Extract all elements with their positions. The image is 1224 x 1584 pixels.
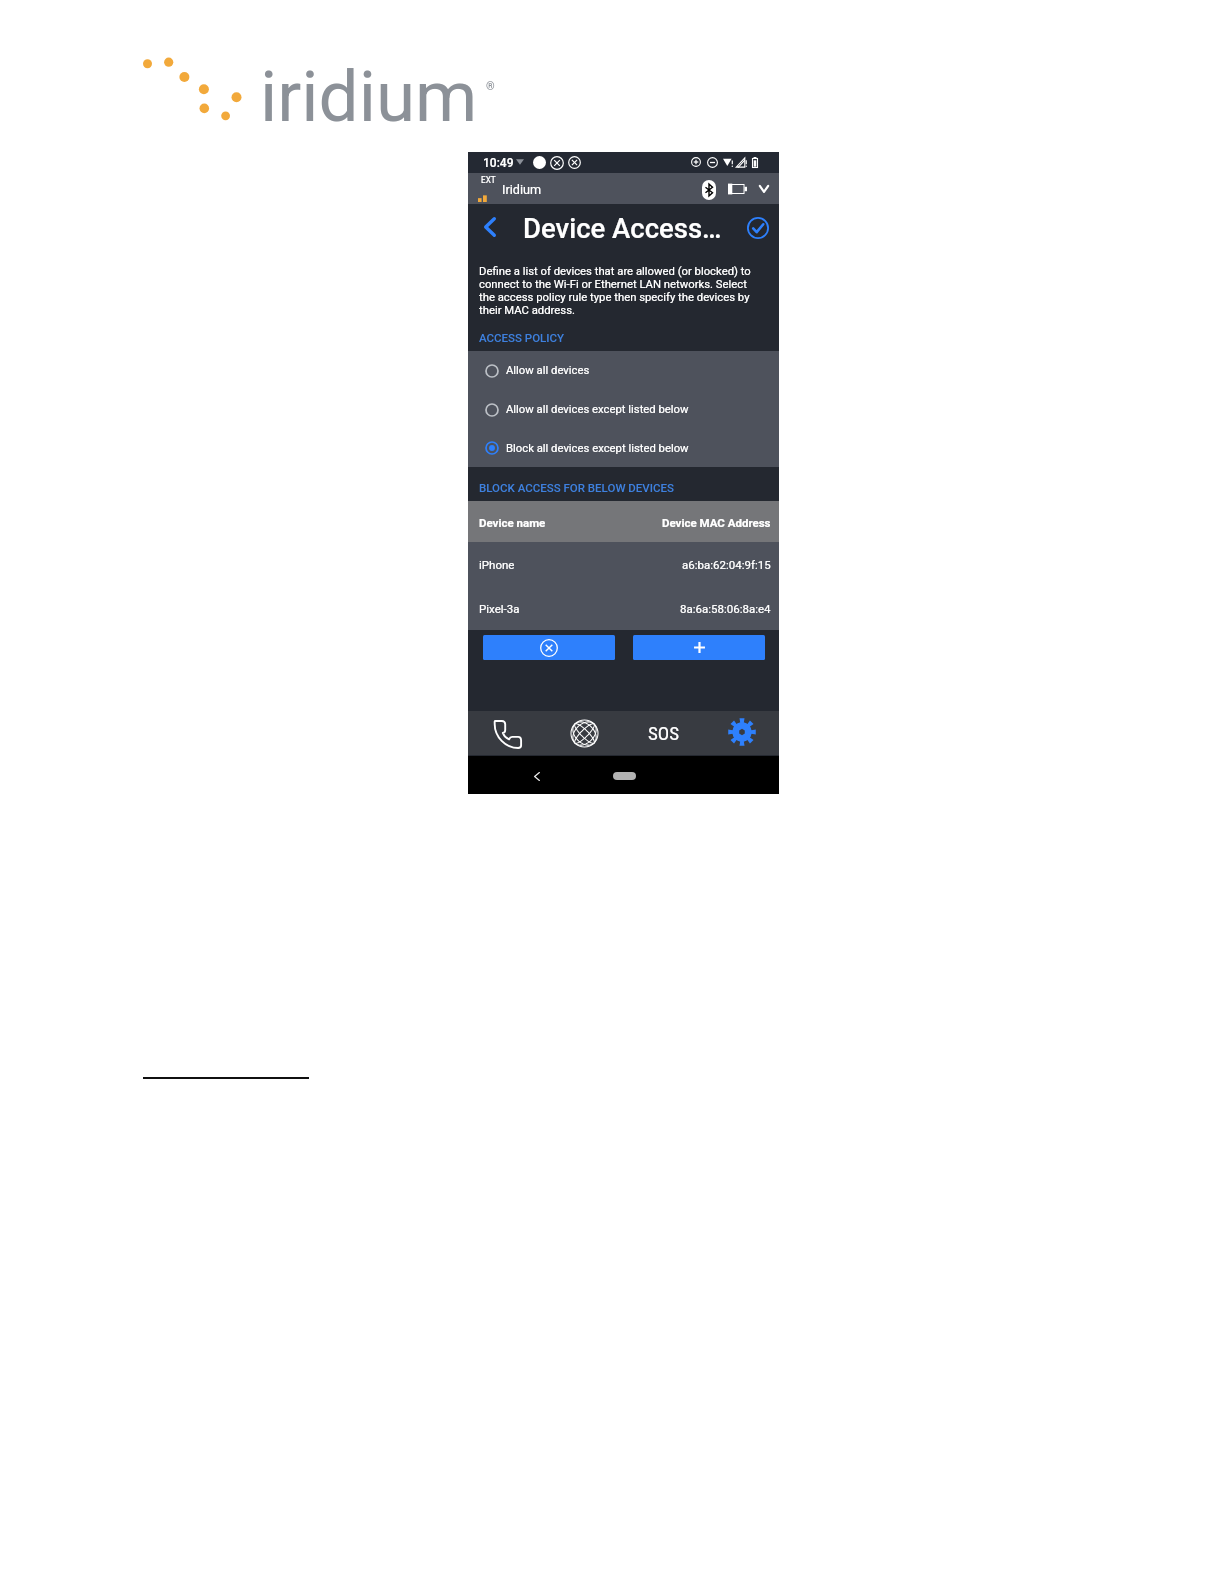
staticText: Pixel-3a: [479, 602, 520, 615]
staticText: EXT: [481, 175, 496, 185]
staticText: Device Access…: [523, 212, 722, 244]
button[interactable]: Block all devices except listed below: [468, 429, 779, 467]
staticText: Block all devices except listed below: [506, 442, 689, 455]
button[interactable]: Allow all devices except listed below: [468, 390, 779, 429]
button[interactable]: Internet: [545, 711, 623, 755]
staticText: ACCESS POLICY: [479, 331, 565, 344]
staticText: Iridium: [502, 182, 542, 197]
button[interactable]: Pixel-3a: [468, 586, 779, 630]
staticText: Define a list of devices that are allowe…: [479, 265, 764, 317]
staticText: iPhone: [479, 558, 515, 571]
staticText: iridium: [260, 55, 478, 138]
staticText: 8a:6a:58:06:8a:e4: [680, 602, 771, 615]
button[interactable]: Back: [475, 212, 505, 242]
button[interactable]: iPhone: [468, 542, 779, 586]
button[interactable]: Confirm: [743, 213, 772, 242]
staticText: Device MAC Address: [662, 516, 771, 529]
button[interactable]: Phone: [468, 711, 545, 755]
staticText: Allow all devices except listed below: [506, 403, 689, 416]
button[interactable]: Back: [522, 761, 552, 791]
staticText: SOS: [648, 722, 680, 744]
staticText: 10:49: [483, 156, 514, 170]
button[interactable]: Add device: [633, 635, 765, 660]
staticText: Device name: [479, 516, 546, 529]
button[interactable]: SOS: [623, 711, 701, 755]
staticText: BLOCK ACCESS FOR BELOW DEVICES: [479, 481, 675, 494]
staticText: ®: [486, 80, 495, 93]
button[interactable]: Settings: [701, 711, 779, 755]
staticText: a6:ba:62:04:9f:15: [682, 558, 771, 571]
button[interactable]: Allow all devices: [468, 351, 779, 390]
button[interactable]: Delete device: [483, 635, 615, 660]
button[interactable]: Home: [613, 772, 636, 780]
staticText: Allow all devices: [506, 364, 590, 377]
